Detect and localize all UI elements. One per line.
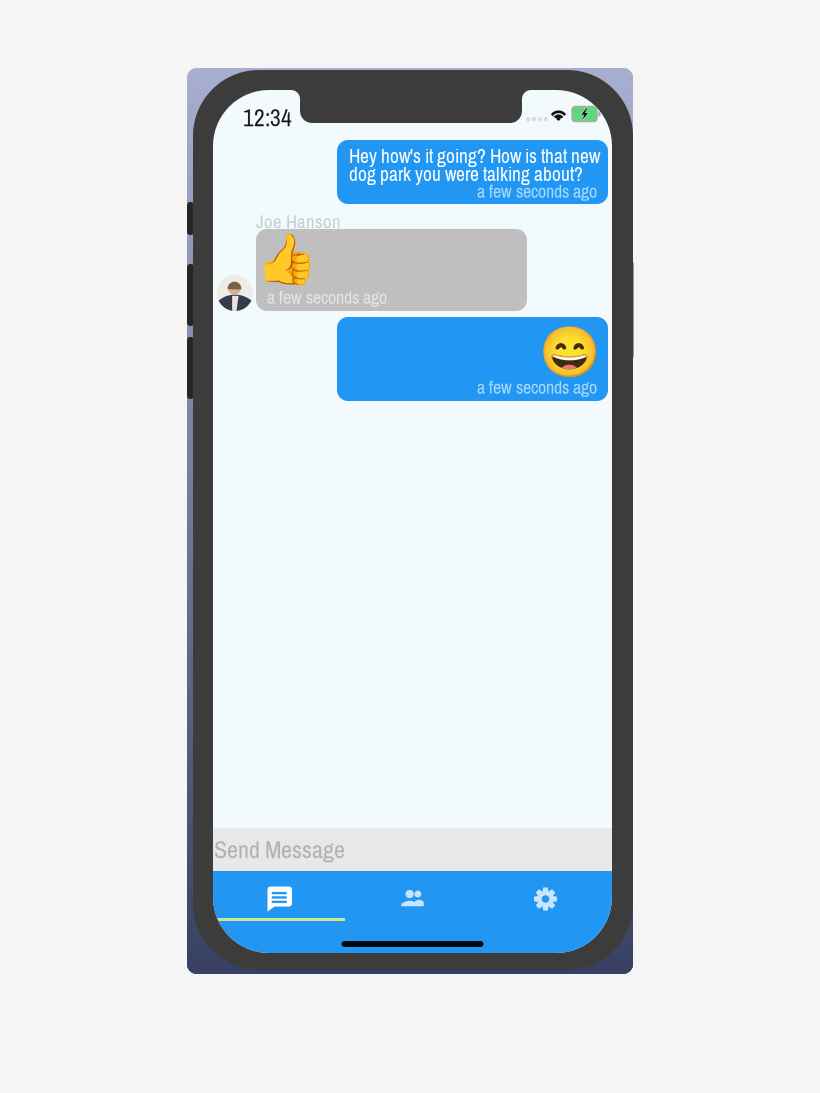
staticText: Send Message (214, 833, 345, 866)
staticText: 😄 (539, 323, 600, 381)
staticText: a few seconds ago (477, 375, 597, 399)
staticText: 12:34 (243, 102, 292, 133)
button[interactable]: Send Message (213, 828, 612, 871)
staticText: Hey how's it going? How is that new dog … (349, 143, 600, 187)
staticText: 👍 (256, 230, 317, 288)
staticText: Joe Hanson (256, 209, 341, 234)
staticText: a few seconds ago (477, 179, 597, 203)
button[interactable]: Contacts (346, 884, 479, 914)
staticText: a few seconds ago (267, 285, 387, 309)
button[interactable]: Chats (213, 884, 346, 914)
button[interactable]: Settings (479, 884, 612, 914)
